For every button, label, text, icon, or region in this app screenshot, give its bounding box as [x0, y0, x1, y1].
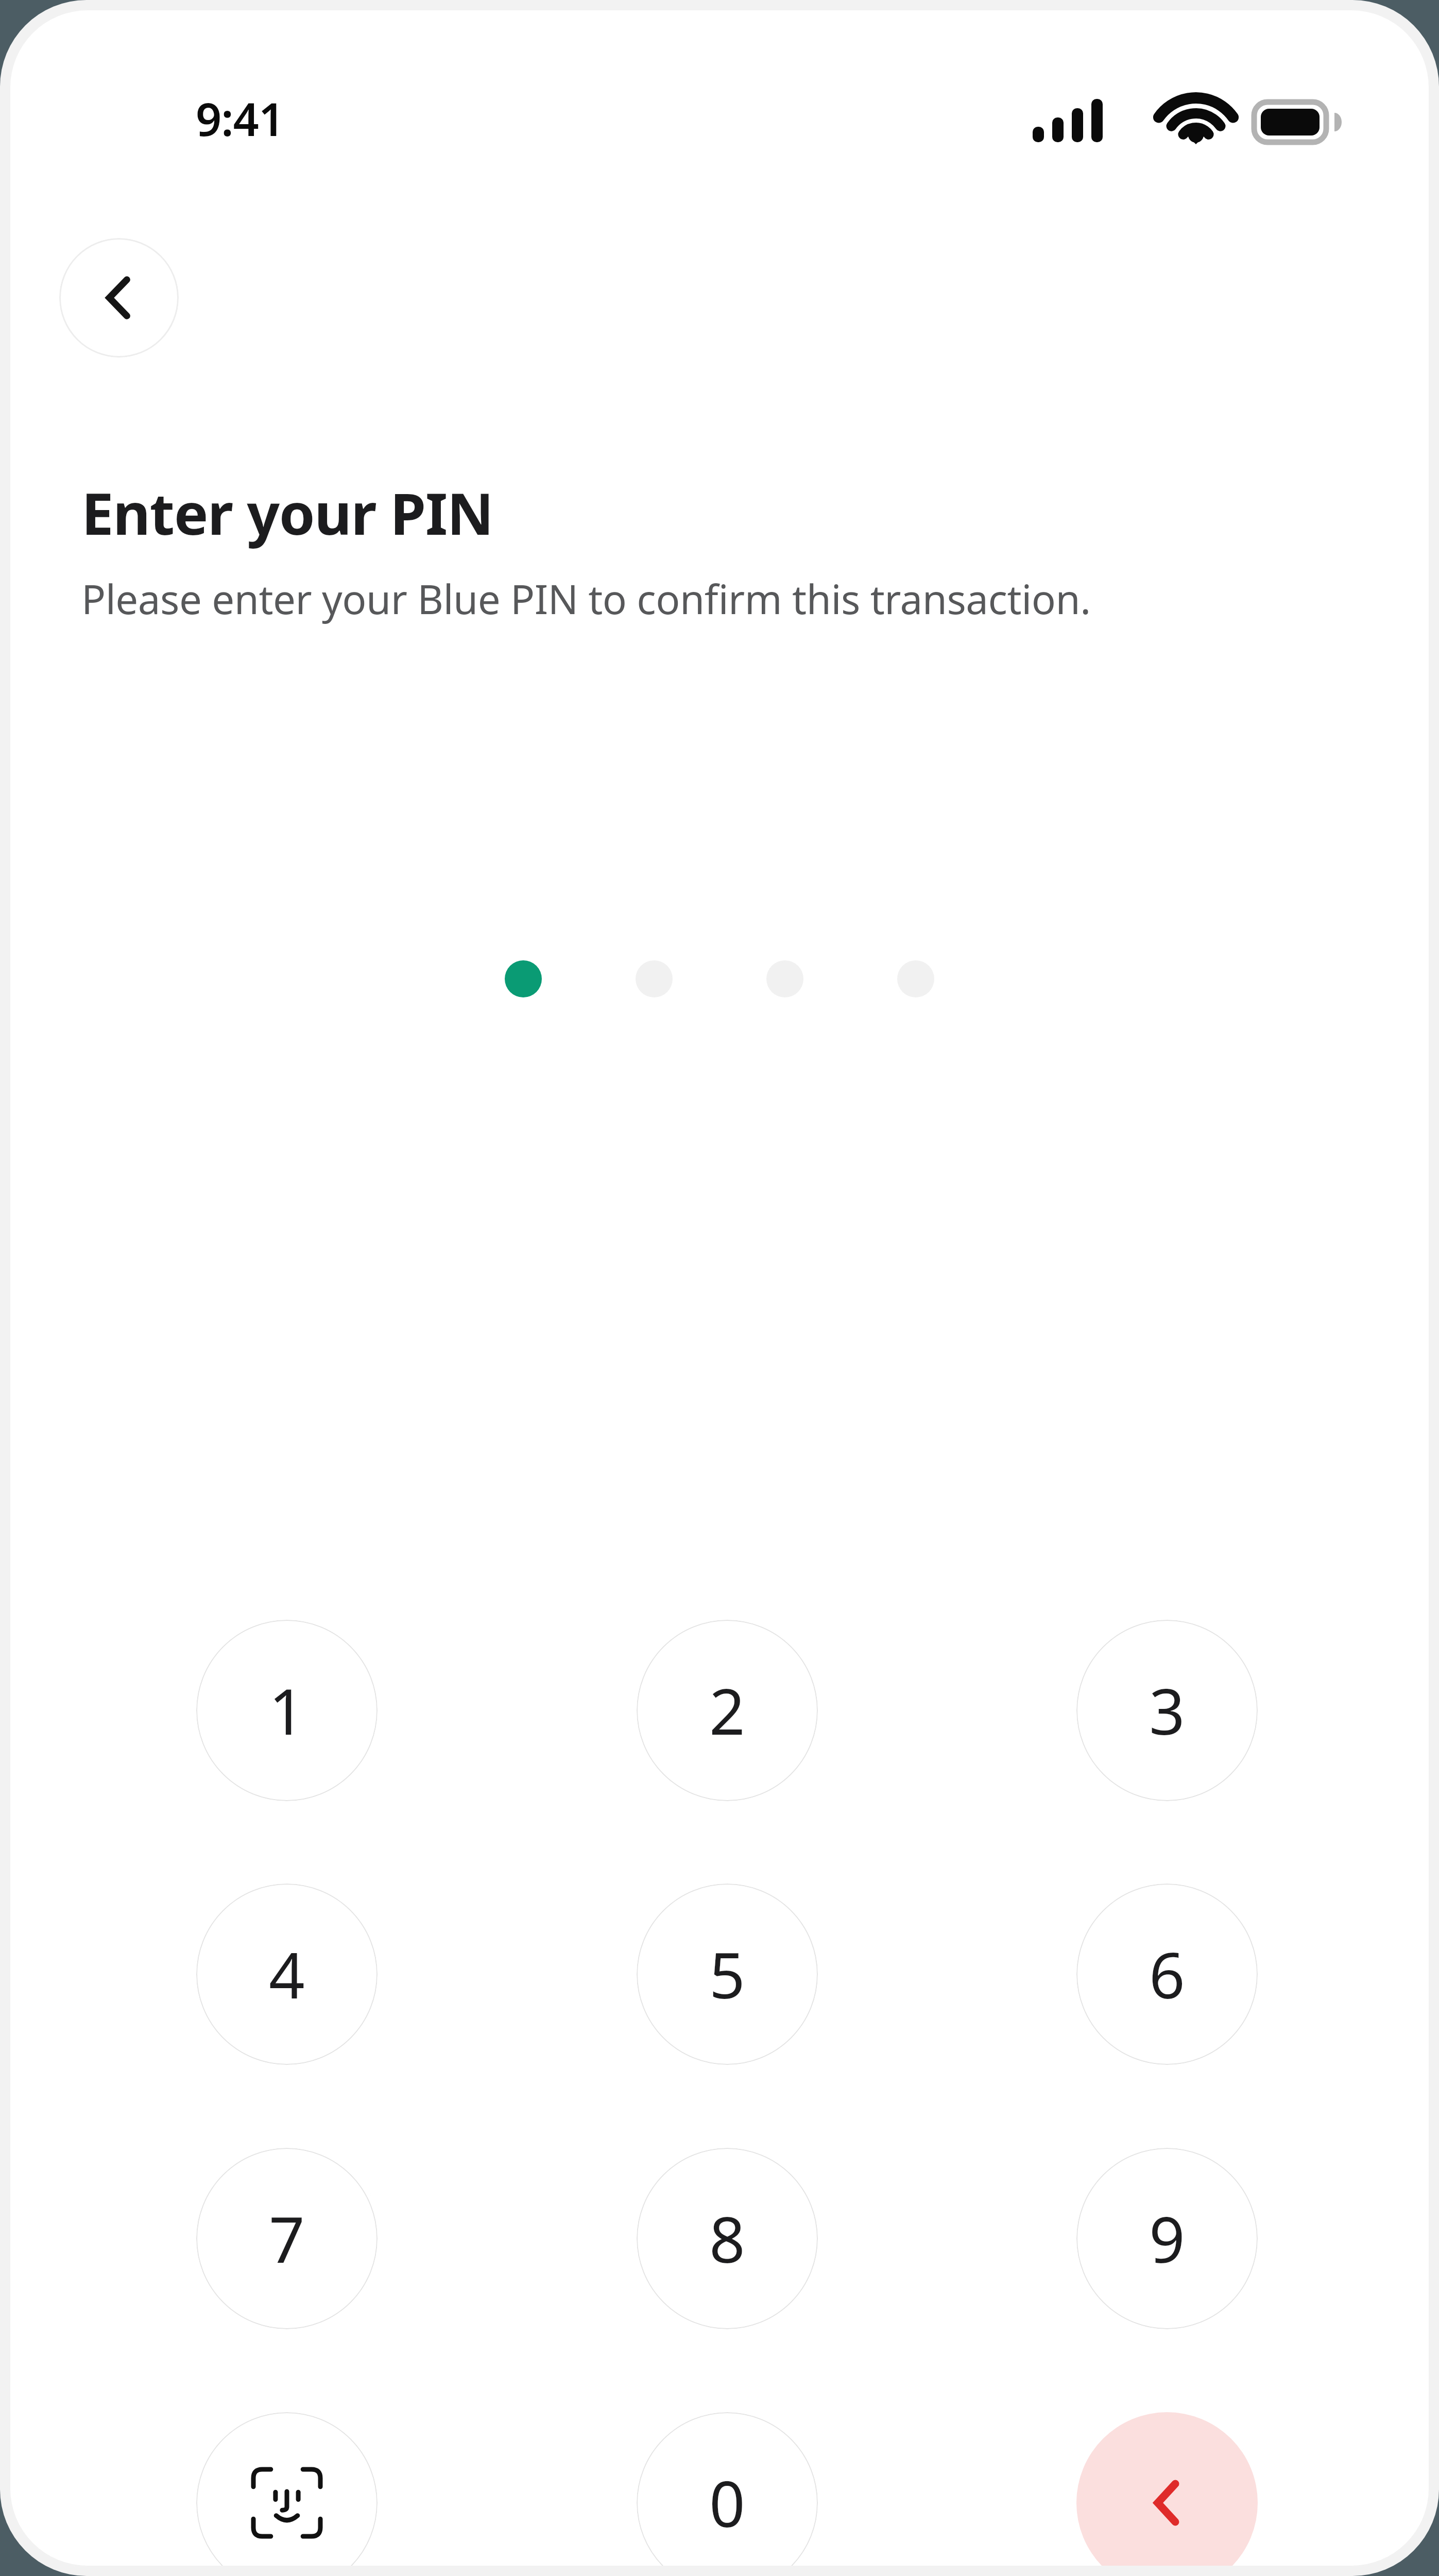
- staticText: Enter your PIN: [81, 473, 493, 552]
- button[interactable]: 1: [196, 1620, 378, 1801]
- button[interactable]: Back: [59, 238, 179, 358]
- button[interactable]: 7: [196, 2148, 378, 2329]
- button[interactable]: 9: [1076, 2148, 1258, 2329]
- button[interactable]: 2: [637, 1620, 818, 1801]
- button[interactable]: 3: [1076, 1620, 1258, 1801]
- staticText: 7: [269, 2196, 305, 2281]
- button[interactable]: Face ID: [196, 2412, 378, 2566]
- button[interactable]: 6: [1076, 1884, 1258, 2065]
- staticText: 5: [709, 1931, 745, 2017]
- staticText: 3: [1149, 1668, 1185, 1753]
- staticText: 8: [709, 2196, 745, 2281]
- button[interactable]: 0: [637, 2412, 818, 2566]
- staticText: 9:41: [196, 88, 284, 149]
- button[interactable]: 4: [196, 1884, 378, 2065]
- staticText: 9: [1149, 2196, 1185, 2281]
- button[interactable]: Delete: [1076, 2412, 1258, 2566]
- button[interactable]: 8: [637, 2148, 818, 2329]
- staticText: 4: [269, 1931, 305, 2017]
- staticText: 0: [709, 2460, 745, 2546]
- staticText: 6: [1149, 1931, 1185, 2017]
- staticText: Please enter your Blue PIN to confirm th…: [81, 571, 1091, 626]
- button[interactable]: 5: [637, 1884, 818, 2065]
- staticText: 2: [709, 1668, 745, 1753]
- staticText: 1: [269, 1668, 305, 1753]
